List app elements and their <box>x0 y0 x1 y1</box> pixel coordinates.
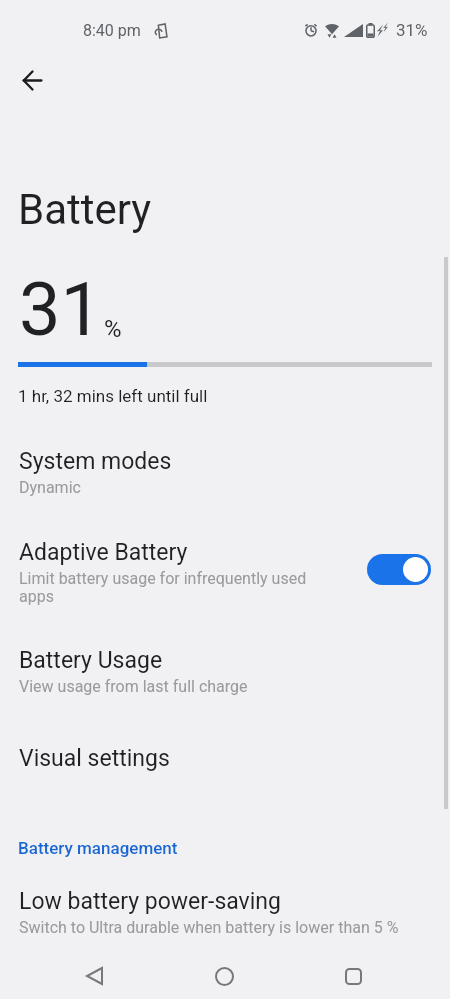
button[interactable]: Back <box>72 954 116 998</box>
staticText: Dynamic <box>19 478 81 497</box>
button[interactable]: System modes <box>0 436 450 504</box>
staticText: Adaptive Battery <box>19 539 188 566</box>
button[interactable]: Visual settings <box>0 733 450 785</box>
button[interactable]: Recent apps <box>331 954 375 998</box>
button[interactable]: Adaptive Battery, on <box>367 554 431 585</box>
staticText: Visual settings <box>19 745 170 772</box>
staticText: 31 <box>19 266 103 353</box>
staticText: Limit battery usage for infrequently use… <box>19 569 319 606</box>
staticText: % <box>104 315 122 343</box>
staticText: 8:40 pm <box>83 21 141 40</box>
button[interactable]: Navigate up <box>10 58 54 102</box>
button[interactable]: Low battery power-saving <box>0 876 450 938</box>
staticText: Battery <box>18 185 152 234</box>
button[interactable]: Adaptive Battery <box>0 527 450 613</box>
staticText: System modes <box>19 448 172 475</box>
button[interactable]: Battery Usage <box>0 635 450 699</box>
staticText: Switch to Ultra durable when battery is … <box>19 918 399 937</box>
button[interactable]: Home <box>202 954 246 998</box>
staticText: Battery Usage <box>19 647 163 674</box>
staticText: 1 hr, 32 mins left until full <box>18 386 208 406</box>
button[interactable]: Battery management <box>15 834 181 862</box>
staticText: Low battery power-saving <box>19 888 281 915</box>
staticText: View usage from last full charge <box>19 677 248 696</box>
staticText: 31% <box>396 20 428 40</box>
